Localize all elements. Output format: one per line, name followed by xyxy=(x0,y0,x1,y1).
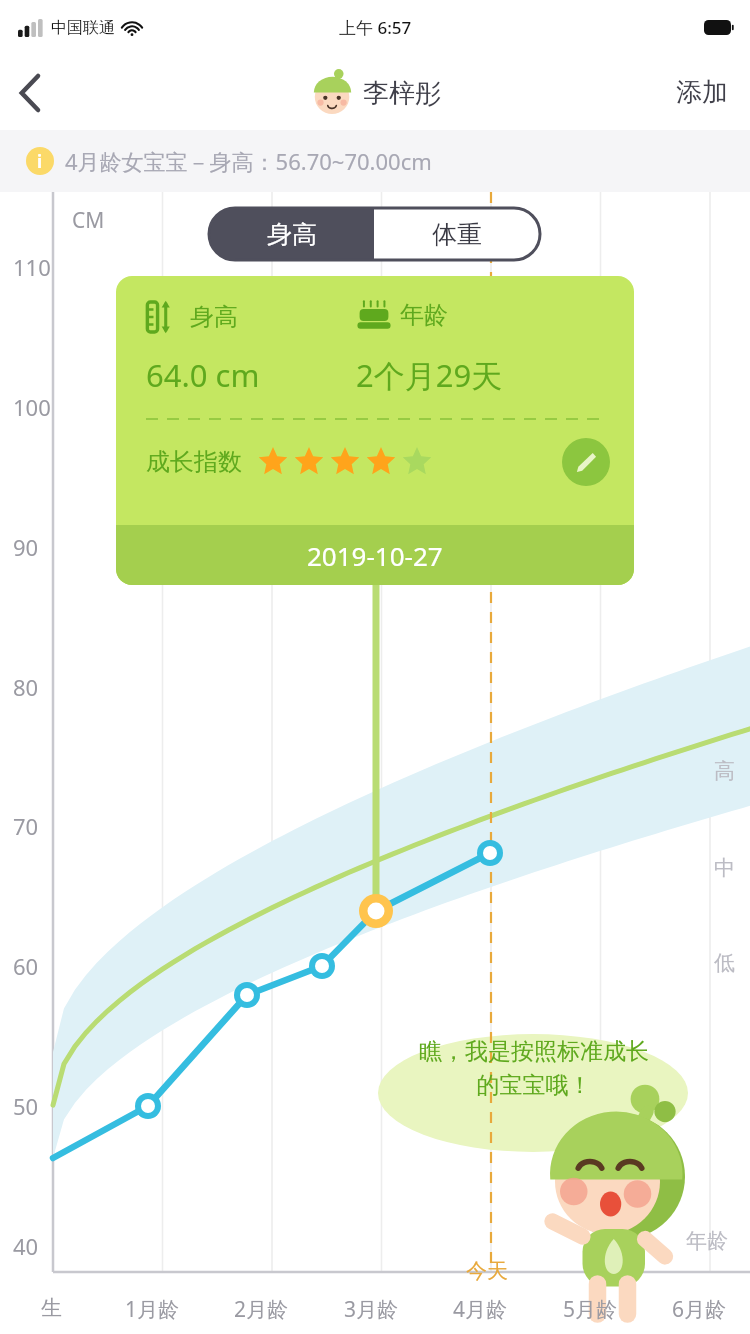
staticText: 李梓彤 xyxy=(363,77,441,110)
staticText: 3月龄 xyxy=(344,1295,399,1324)
staticText: 110 xyxy=(13,252,51,282)
staticText: 70 xyxy=(13,811,39,841)
staticText: 生 xyxy=(41,1295,62,1321)
staticText: 4月龄女宝宝－身高：56.70~70.00cm xyxy=(65,146,432,176)
staticText: 60 xyxy=(13,951,39,981)
staticText: 2019-10-27 xyxy=(307,538,443,573)
staticText: 高 xyxy=(714,758,735,784)
staticText: 80 xyxy=(13,672,39,702)
staticText: 2月龄 xyxy=(234,1295,289,1324)
button[interactable]: 添加 xyxy=(654,66,750,119)
staticText: 6月龄 xyxy=(672,1295,727,1324)
staticText: 身高 xyxy=(190,302,238,332)
staticText: 低 xyxy=(714,950,735,976)
staticText: 今天 xyxy=(466,1258,508,1284)
staticText: 5月龄 xyxy=(563,1295,618,1324)
staticText: 体重 xyxy=(432,219,482,250)
button[interactable]: Back xyxy=(0,62,62,124)
button[interactable]: 体重 xyxy=(374,208,540,260)
staticText: 中 xyxy=(714,855,735,881)
staticText: 身高 xyxy=(267,219,317,250)
staticText: 100 xyxy=(13,392,51,422)
staticText: 2个月29天 xyxy=(356,354,503,396)
staticText: 中国联通 xyxy=(51,18,115,38)
staticText: 64.0 cm xyxy=(146,354,356,396)
staticText: 40 xyxy=(13,1231,39,1261)
button[interactable]: Edit xyxy=(562,438,610,486)
staticText: 90 xyxy=(13,532,39,562)
staticText: 年龄 xyxy=(400,300,448,330)
button[interactable]: 李梓彤 xyxy=(309,69,441,117)
staticText: CM xyxy=(72,206,105,235)
staticText: 年龄 xyxy=(686,1228,728,1254)
button[interactable]: 身高 xyxy=(116,276,634,585)
button[interactable]: 身高 xyxy=(209,208,374,260)
staticText: 瞧，我是按照标准成长 的宝宝哦！ xyxy=(398,1037,670,1099)
staticText: 1月龄 xyxy=(125,1295,180,1324)
staticText: 50 xyxy=(13,1091,39,1121)
staticText: 添加 xyxy=(676,76,728,109)
staticText: i xyxy=(37,150,43,173)
staticText: 4月龄 xyxy=(453,1295,508,1324)
staticText: 上午 6:57 xyxy=(339,16,412,39)
staticText: 成长指数 xyxy=(146,447,242,477)
